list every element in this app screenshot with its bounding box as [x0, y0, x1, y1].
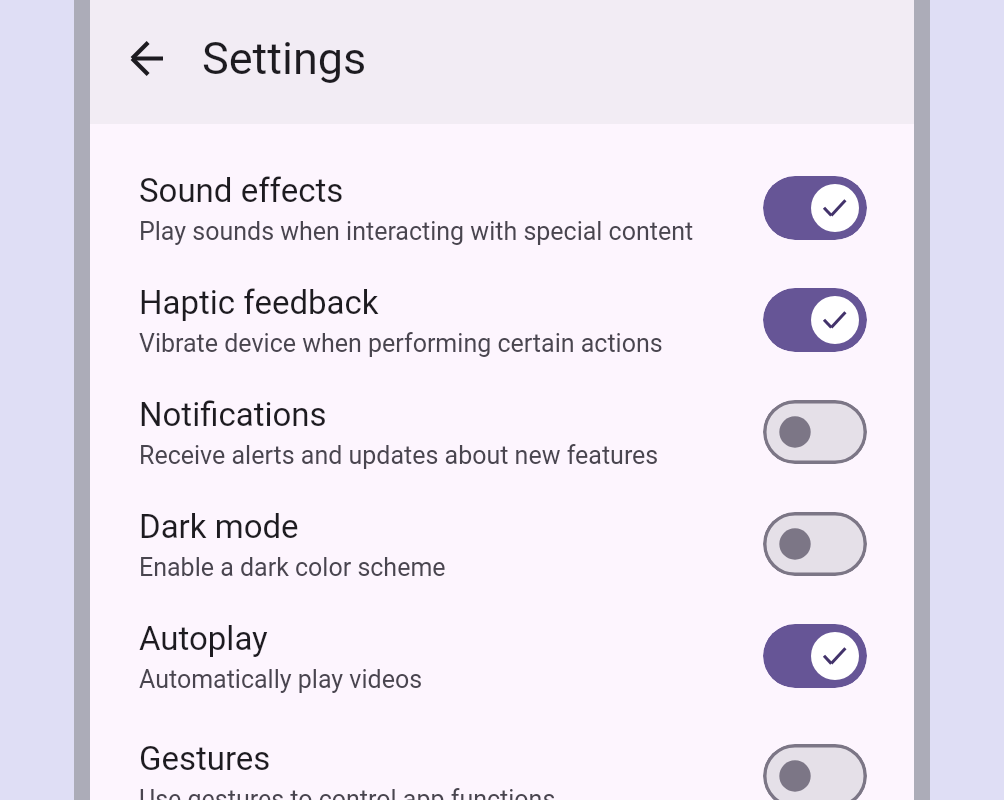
- staticText: Dark mode: [139, 507, 299, 546]
- button[interactable]: Haptic feedback: [90, 264, 914, 376]
- button[interactable]: Toggle off: [763, 744, 867, 800]
- button[interactable]: Gestures: [90, 720, 914, 800]
- staticText: Notifications: [139, 395, 327, 434]
- button[interactable]: Toggle off: [763, 512, 867, 576]
- staticText: Vibrate device when performing certain a…: [139, 329, 663, 358]
- button[interactable]: Toggle on: [763, 624, 867, 688]
- button[interactable]: Sound effects: [90, 152, 914, 264]
- button[interactable]: Toggle on: [763, 288, 867, 352]
- staticText: Sound effects: [139, 171, 344, 210]
- staticText: Enable a dark color scheme: [139, 553, 446, 582]
- staticText: Automatically play videos: [139, 665, 423, 694]
- staticText: Gestures: [139, 739, 271, 778]
- staticText: Autoplay: [139, 619, 268, 658]
- button[interactable]: Toggle off: [763, 400, 867, 464]
- staticText: Receive alerts and updates about new fea…: [139, 441, 659, 470]
- button[interactable]: Autoplay: [90, 600, 914, 712]
- staticText: Haptic feedback: [139, 283, 379, 322]
- button[interactable]: Toggle on: [763, 176, 867, 240]
- button[interactable]: Notifications: [90, 376, 914, 488]
- staticText: Use gestures to control app functions: [139, 785, 556, 800]
- button[interactable]: Back: [120, 32, 172, 84]
- staticText: Play sounds when interacting with specia…: [139, 217, 694, 246]
- button[interactable]: Dark mode: [90, 488, 914, 600]
- staticText: Settings: [202, 32, 367, 85]
